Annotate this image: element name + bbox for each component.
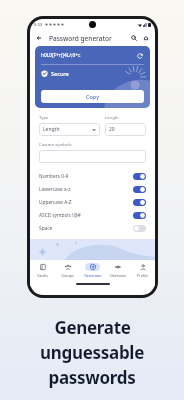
button[interactable]: Uppercase A-Z xyxy=(39,196,146,209)
button[interactable]: ASCII symbols !@# xyxy=(39,209,146,222)
button[interactable]: Regenerate password xyxy=(135,51,144,60)
staticText: Length xyxy=(105,115,119,121)
staticText: Generate xyxy=(54,316,131,339)
staticText: Copy xyxy=(86,93,100,100)
button[interactable]: 20 xyxy=(105,123,146,136)
staticText: ASCII symbols !@# xyxy=(39,212,81,219)
button[interactable]: Lowercase a-z xyxy=(39,183,146,196)
button[interactable]: Space xyxy=(39,222,146,235)
staticText: Length xyxy=(43,126,60,133)
staticText: Groups xyxy=(61,273,74,278)
staticText: Numbers 0-9 xyxy=(39,173,69,180)
staticText: unguessable xyxy=(40,341,144,364)
staticText: Uppercase A-Z xyxy=(39,199,72,206)
staticText: Type xyxy=(39,115,49,121)
staticText: Overview xyxy=(110,273,126,278)
staticText: Generator xyxy=(84,273,102,278)
staticText: Space xyxy=(39,225,53,232)
button[interactable]: Groups xyxy=(55,260,80,280)
staticText: Secure xyxy=(51,70,69,77)
staticText: Lowercase a-z xyxy=(39,186,71,193)
button[interactable]: Numbers 0-9 xyxy=(39,170,146,183)
button[interactable]: Notifications xyxy=(140,32,152,44)
staticText: Password generator xyxy=(49,34,112,43)
button[interactable]: Vaults xyxy=(30,260,55,280)
button[interactable] xyxy=(39,150,146,163)
button[interactable]: Overview xyxy=(105,260,130,280)
staticText: Profile xyxy=(137,273,148,278)
button[interactable]: Back xyxy=(33,32,45,44)
button[interactable]: Length xyxy=(39,123,100,136)
staticText: Custom symbols xyxy=(39,142,72,148)
button[interactable]: Copy xyxy=(41,90,144,103)
button[interactable]: Search xyxy=(128,32,140,44)
staticText: h0L0[F+r()4L/;0+c xyxy=(41,52,81,59)
button[interactable]: Generator xyxy=(80,260,105,280)
staticText: Vaults xyxy=(37,273,48,278)
staticText: 5:33 xyxy=(34,22,42,27)
staticText: 20 xyxy=(109,126,115,133)
button[interactable]: Profile xyxy=(130,260,155,280)
staticText: passwords xyxy=(48,366,136,389)
